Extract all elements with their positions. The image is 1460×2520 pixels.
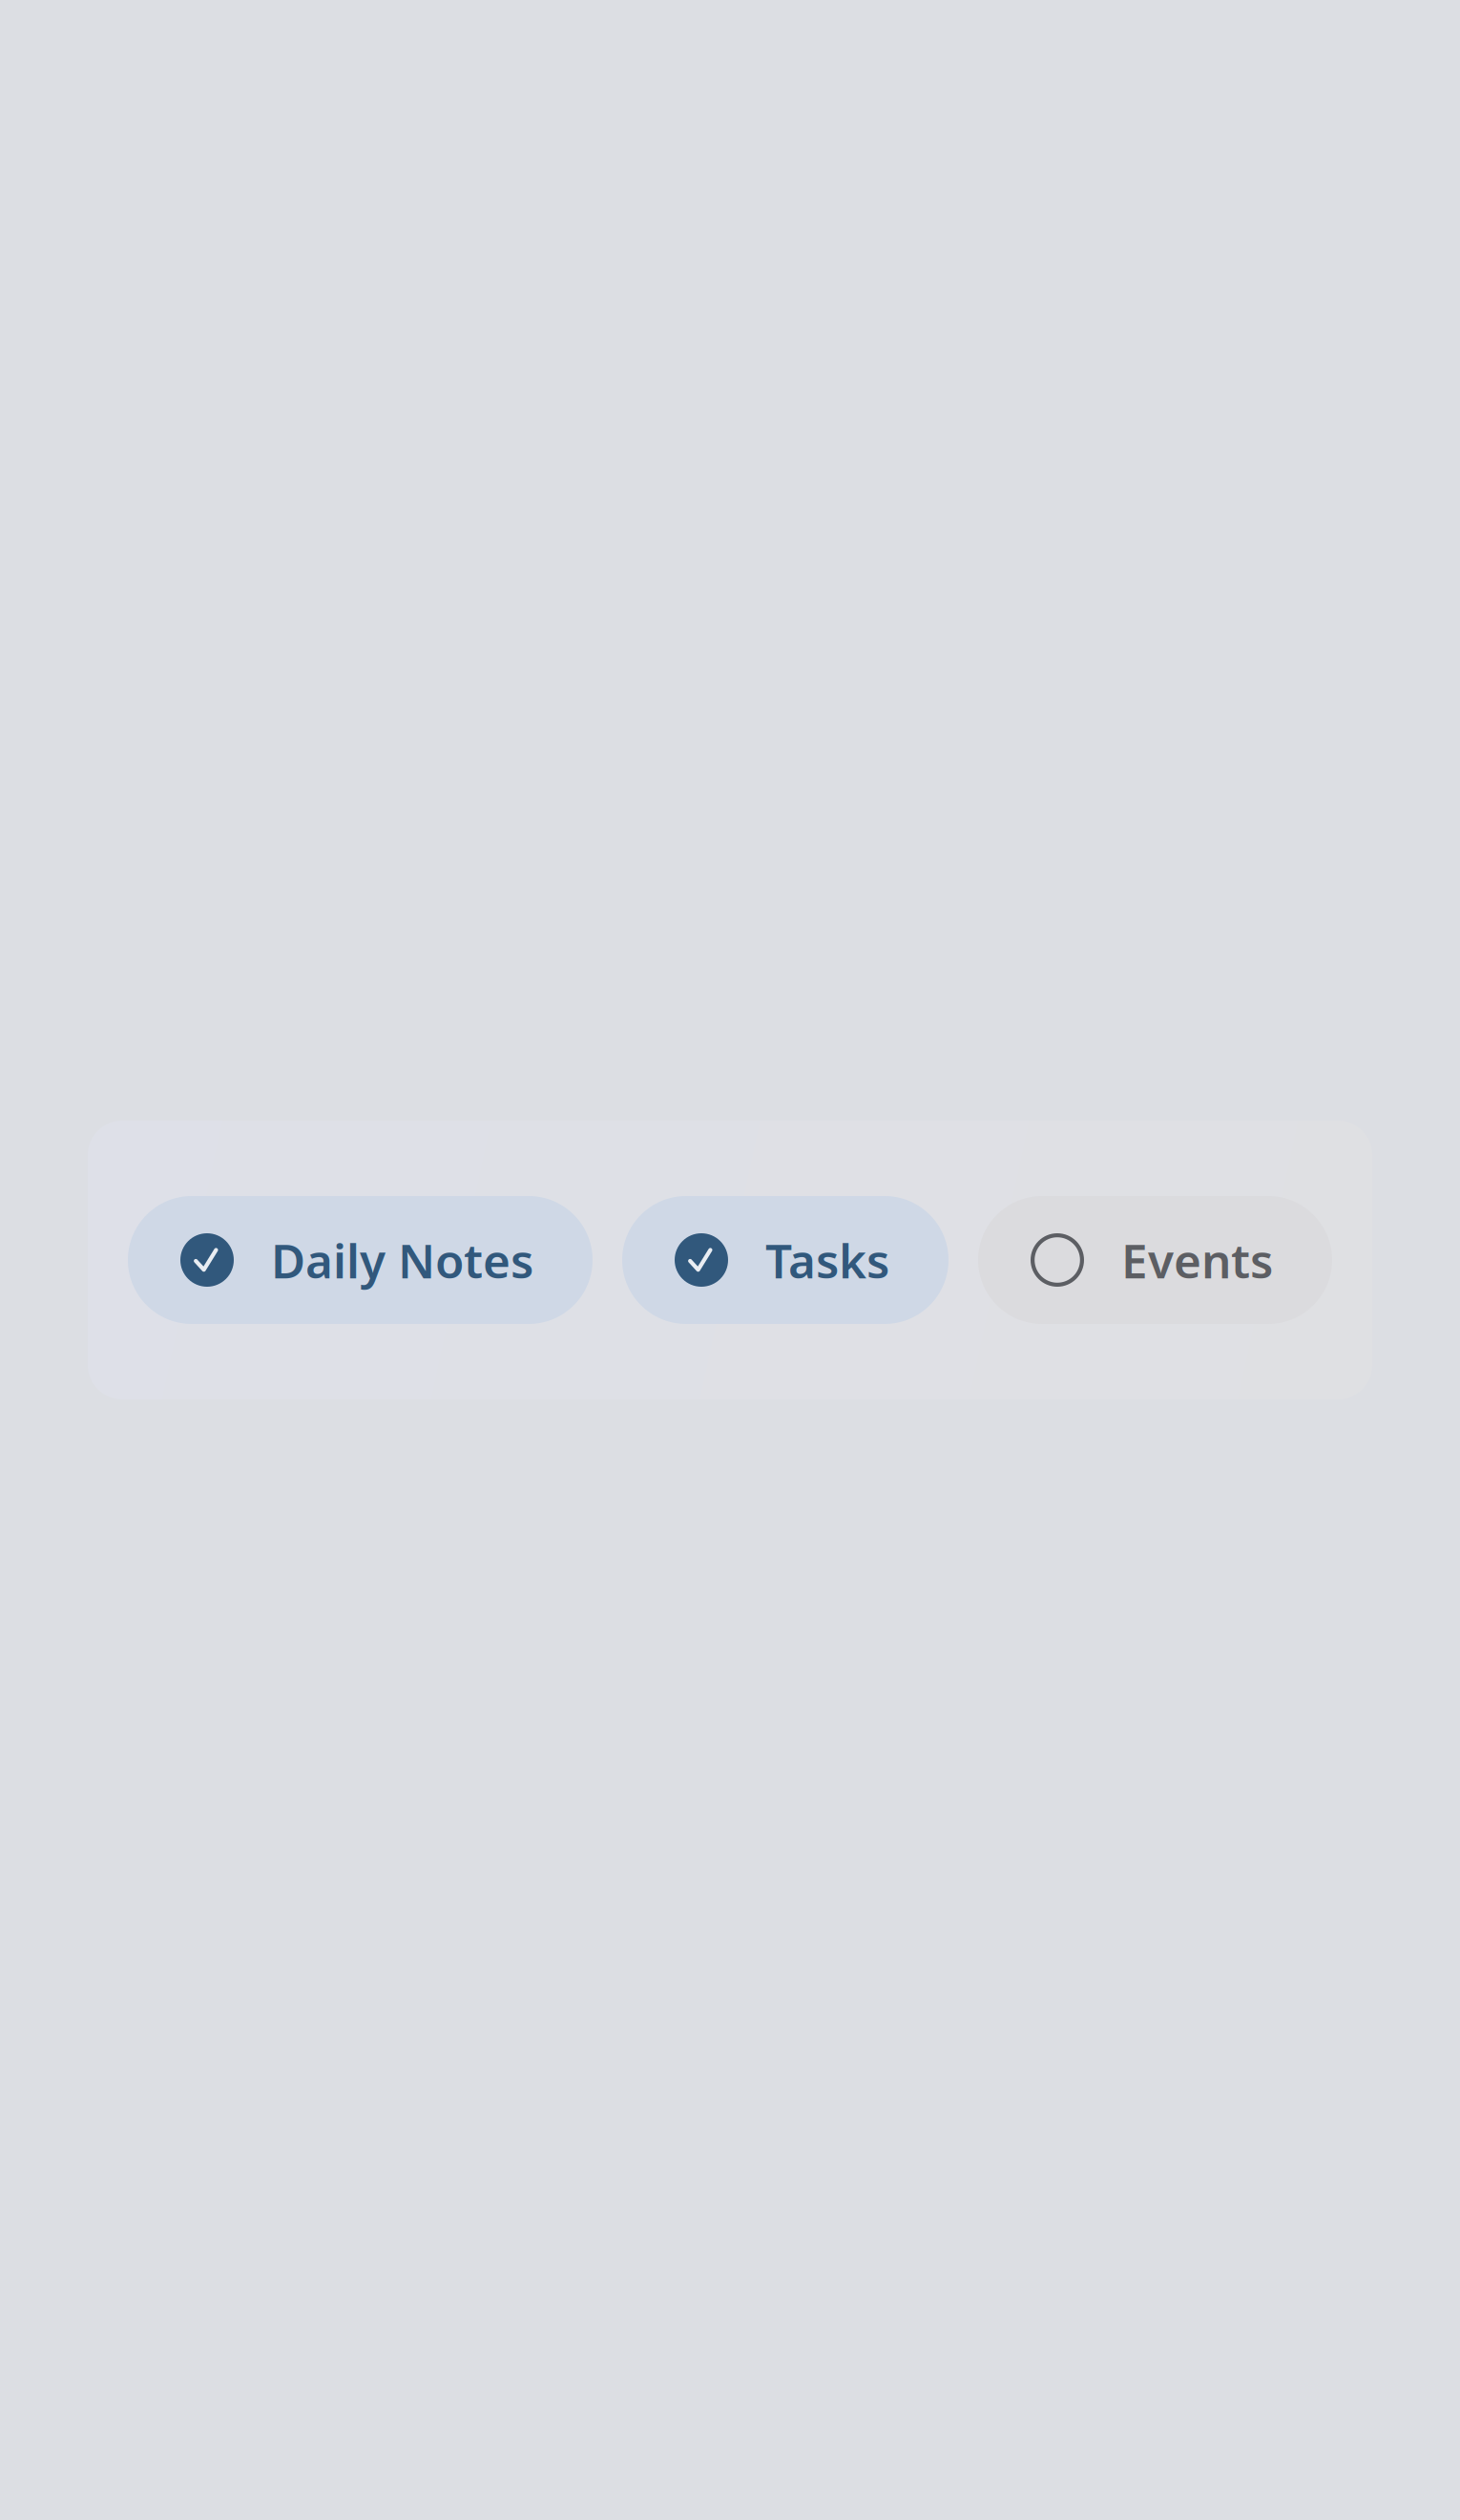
staticText: Events <box>1121 1229 1273 1291</box>
staticText: Daily Notes <box>271 1229 533 1291</box>
staticText: Tasks <box>765 1229 889 1291</box>
button[interactable]: Events <box>978 1196 1332 1324</box>
button[interactable]: Tasks <box>622 1196 949 1324</box>
button[interactable]: Daily Notes <box>128 1196 593 1324</box>
